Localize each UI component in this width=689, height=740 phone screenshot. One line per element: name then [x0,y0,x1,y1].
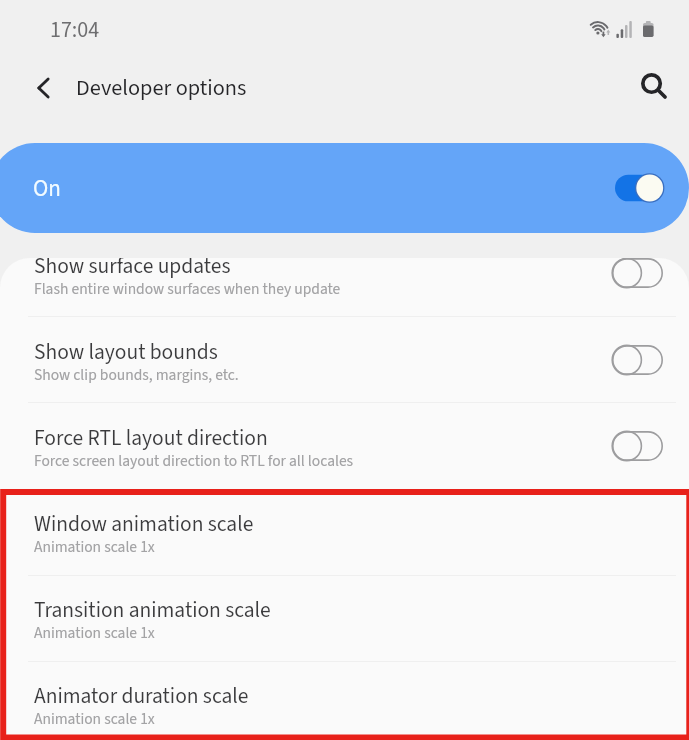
staticText: Animation scale 1x [34,708,155,730]
button[interactable]: Back [20,64,68,112]
button[interactable]: Search [631,63,679,111]
staticText: Animation scale 1x [34,622,155,644]
staticText: On [33,172,61,205]
button[interactable]: Transition animation scale [0,576,689,661]
staticText: Force RTL layout direction [34,423,268,454]
staticText: Animation scale 1x [34,536,155,558]
staticText: Show clip bounds, margins, etc. [34,364,239,386]
button[interactable]: Show layout bounds [0,317,689,402]
button[interactable]: On [0,143,689,233]
staticText: Transition animation scale [34,595,271,626]
staticText: Window animation scale [34,509,254,540]
button[interactable]: Window animation scale [0,490,689,575]
staticText: Flash entire window surfaces when they u… [34,278,341,300]
staticText: Show layout bounds [34,337,218,368]
button[interactable]: Show surface updates [0,258,689,316]
staticText: Developer options [76,72,247,104]
button[interactable]: Animator duration scale [0,662,689,740]
staticText: 17:04 [50,14,100,45]
button[interactable]: Force RTL layout direction [0,403,689,489]
staticText: Show surface updates [34,258,231,282]
staticText: Animator duration scale [34,681,249,712]
staticText: Force screen layout direction to RTL for… [34,450,354,472]
